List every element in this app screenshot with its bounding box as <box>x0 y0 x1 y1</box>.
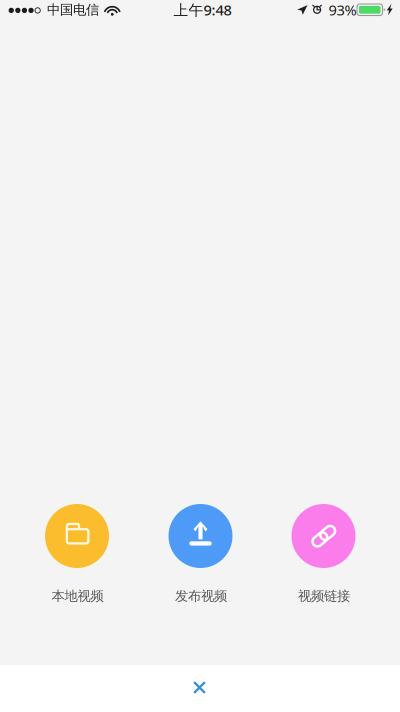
button[interactable]: Close <box>0 665 400 712</box>
staticText: 中国电信 <box>47 2 99 18</box>
staticText: 发布视频 <box>175 588 227 604</box>
button[interactable]: 本地视频 <box>29 504 125 608</box>
staticText: 上午9:48 <box>173 0 231 20</box>
button[interactable]: 发布视频 <box>152 504 248 608</box>
staticText: 93% <box>328 0 356 20</box>
staticText: 视频链接 <box>298 588 350 604</box>
staticText: 本地视频 <box>51 588 103 604</box>
button[interactable]: 视频链接 <box>275 504 371 608</box>
